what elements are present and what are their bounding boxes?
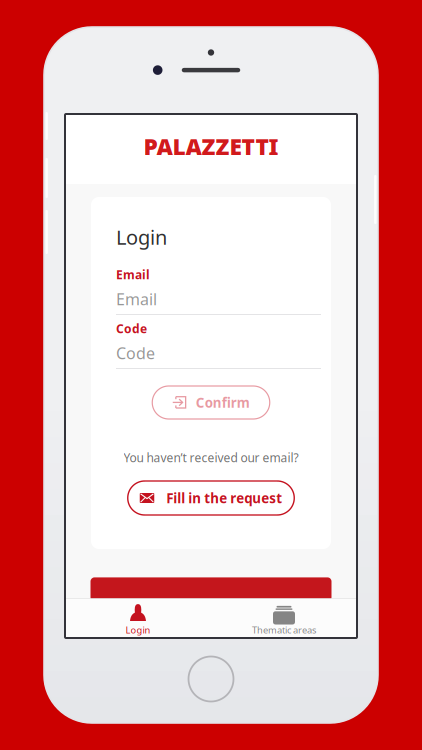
staticText: Confirm [196,394,250,411]
staticText: Code [116,320,147,336]
staticText: Email [116,288,157,310]
staticText: Thematic areas [252,624,316,636]
button[interactable]: Login [65,599,211,638]
button[interactable]: Thematic areas [211,599,357,638]
staticText: Fill in the request [166,489,282,507]
staticText: Login [116,224,167,250]
button[interactable]: Confirm [152,386,270,419]
button[interactable]: Fill in the request [128,481,294,515]
staticText: PALAZZETTI [143,131,278,161]
staticText: Code [116,342,155,364]
staticText: You haven’t received our email? [123,449,298,465]
staticText: Login [125,624,150,636]
staticText: Email [116,266,150,282]
